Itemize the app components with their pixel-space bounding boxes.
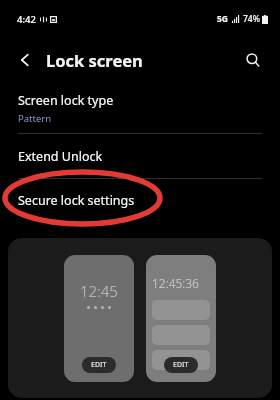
staticText: 74%: [243, 13, 260, 25]
staticText: Secure lock settings: [18, 192, 135, 209]
staticText: 12:45: [80, 281, 118, 301]
staticText: Extend Unlock: [18, 148, 103, 165]
button[interactable]: EDIT: [164, 357, 198, 373]
staticText: EDIT: [173, 360, 189, 370]
button[interactable]: 12:45: [64, 255, 134, 382]
staticText: Pattern: [18, 112, 52, 125]
staticText: Lock screen: [46, 49, 143, 71]
button[interactable]: Screen lock type: [0, 82, 280, 133]
button[interactable]: Search: [236, 43, 270, 77]
staticText: EDIT: [91, 360, 107, 370]
button[interactable]: Secure lock settings: [0, 179, 280, 221]
staticText: 5G: [217, 13, 229, 25]
button[interactable]: Back: [8, 43, 42, 77]
staticText: 12:45:36: [152, 275, 199, 291]
staticText: Screen lock type: [18, 92, 114, 109]
button[interactable]: 12:45:36: [146, 255, 216, 382]
button[interactable]: Extend Unlock: [0, 134, 280, 178]
button[interactable]: EDIT: [82, 357, 116, 373]
staticText: 4:42: [17, 13, 36, 26]
